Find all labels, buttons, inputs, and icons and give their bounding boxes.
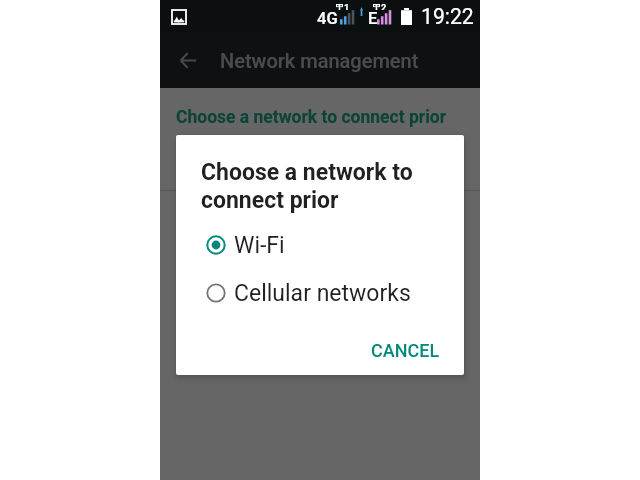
staticText: 2 [381,3,387,10]
button[interactable]: Cellular networks [176,269,464,317]
staticText: 19:22 [421,4,474,29]
staticText: 4G [317,9,338,28]
staticText: 1 [344,3,350,10]
button[interactable]: CANCEL [355,334,456,370]
staticText: E [368,9,378,28]
staticText: Choose a network to connect prior [176,107,447,128]
staticText: Choose a network to connect prior [201,159,413,214]
button[interactable]: Wi-Fi [176,221,464,269]
staticText: Cellular networks [234,280,411,307]
staticText: Network management [220,49,419,72]
staticText: CANCEL [371,340,440,361]
staticText: Wi-Fi [234,232,285,259]
button[interactable]: Back [166,38,210,82]
